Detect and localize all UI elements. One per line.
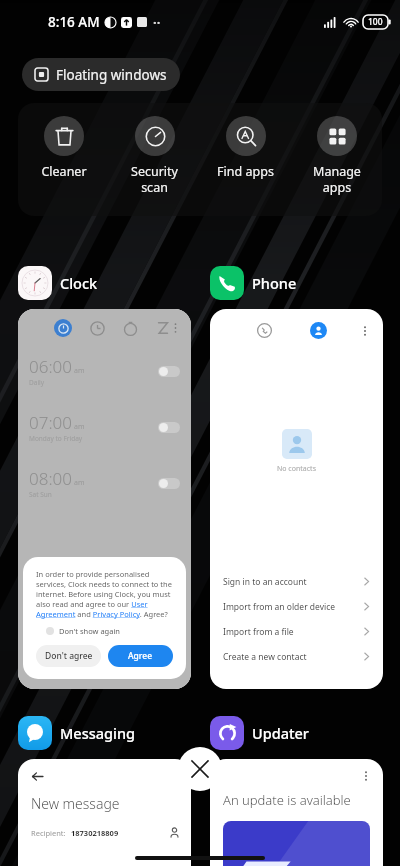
staticText: am [74,478,85,488]
button[interactable]: No contacts [210,309,383,689]
staticText: 8:16 AM [48,13,100,31]
staticText: Monday to Friday [29,434,83,443]
button[interactable]: Import from a file [210,619,383,644]
button[interactable]: Agree [108,645,173,667]
staticText: No contacts [277,464,316,474]
staticText: 06:00 [29,355,72,378]
staticText: ·· [153,13,161,31]
button[interactable]: Clock [18,263,98,303]
staticText: Floating windows [56,66,167,84]
staticText: Daily [29,378,45,387]
staticText: Import from an older device [223,601,336,613]
staticText: Find apps [217,163,274,180]
staticText: Phone [252,273,297,293]
staticText: am [74,366,85,376]
button[interactable]: Import from an older device [210,594,383,619]
button[interactable]: Sign in to an account [210,569,383,594]
button[interactable]: Create a new contact [210,644,383,669]
staticText: Manage apps [313,163,361,195]
staticText: Updater [252,723,309,743]
staticText: am [74,422,85,432]
staticText: Cleaner [41,163,87,180]
button[interactable]: Updater [210,713,309,753]
staticText: Messaging [60,723,136,743]
staticText: An update is available [223,791,351,809]
button[interactable]: Cleaner [18,103,109,216]
staticText: Agree [128,650,153,662]
button[interactable]: Floating windows [22,58,180,91]
staticText: In order to provide personalised service… [36,569,173,619]
staticText: New message [31,794,120,813]
staticText: Import from a file [223,626,294,638]
button[interactable]: Don't show again [36,626,120,636]
button[interactable]: Find apps [200,103,291,216]
staticText: 08:00 [29,467,72,490]
button[interactable]: Manage apps [291,103,382,216]
button[interactable]: Messaging [18,713,136,753]
staticText: Recipient: [31,828,66,838]
staticText: Don't show again [59,626,120,636]
staticText: 18730218809 [71,828,119,838]
button[interactable]: Phone [210,263,297,303]
staticText: Clock [60,273,98,293]
button[interactable]: Security scan [109,103,200,216]
staticText: 07:00 [29,411,72,434]
staticText: Sign in to an account [223,576,307,588]
staticText: 100 [368,16,383,28]
staticText: Create a new contact [223,651,307,663]
button[interactable]: New message [18,759,191,866]
staticText: Security scan [131,163,178,195]
staticText: Sat Sun [29,490,52,499]
button[interactable]: 06:00 [18,309,191,689]
staticText: Don't agree [45,650,93,662]
button[interactable]: Don't agree [36,645,101,667]
button[interactable]: Close [178,747,222,791]
button[interactable]: An update is available [210,759,383,866]
